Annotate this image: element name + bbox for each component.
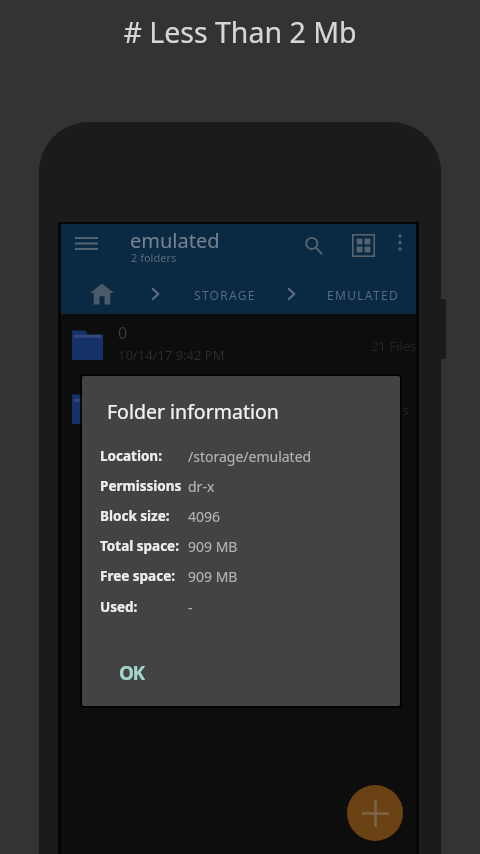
staticText: Used: — [100, 598, 138, 616]
staticText: - — [188, 598, 193, 617]
staticText: Free space: — [100, 567, 176, 585]
button[interactable]: Search — [298, 230, 329, 261]
staticText: # Less Than 2 Mb — [0, 13, 480, 52]
staticText: 3 Files — [371, 401, 409, 419]
staticText: 0 — [118, 322, 128, 344]
button[interactable]: STORAGE — [187, 279, 263, 311]
staticText: emulated — [130, 227, 220, 254]
staticText: dr-x — [188, 477, 215, 496]
staticText: Total space: — [100, 537, 179, 555]
button[interactable]: Grid view — [348, 230, 378, 260]
staticText: OK — [119, 660, 144, 686]
staticText: /storage/emulated — [188, 447, 312, 466]
staticText: 10/14/17 9:42 PM — [118, 346, 225, 364]
button[interactable]: More options — [387, 230, 412, 255]
button[interactable]: 0 — [61, 314, 416, 378]
staticText: 10/14/17 9:42 PM — [118, 410, 225, 428]
button[interactable]: OK — [109, 652, 154, 694]
staticText: 2 folders — [131, 250, 177, 265]
button[interactable]: Menu — [71, 228, 101, 258]
staticText: 4096 — [188, 507, 221, 526]
staticText: Folder information — [107, 398, 279, 425]
button[interactable]: Home — [87, 279, 117, 309]
button[interactable]: Add — [347, 785, 403, 841]
staticText: 21 Files — [371, 337, 417, 355]
staticText: Block size: — [100, 507, 170, 525]
staticText: 909 MB — [188, 537, 238, 556]
staticText: Location: — [100, 447, 162, 465]
staticText: 909 MB — [188, 567, 238, 586]
staticText: Permissions — [100, 477, 182, 495]
staticText: EMULATED — [327, 287, 399, 303]
staticText: STORAGE — [194, 287, 256, 303]
button[interactable]: EMULATED — [320, 279, 406, 311]
button[interactable]: 1 — [61, 378, 416, 442]
